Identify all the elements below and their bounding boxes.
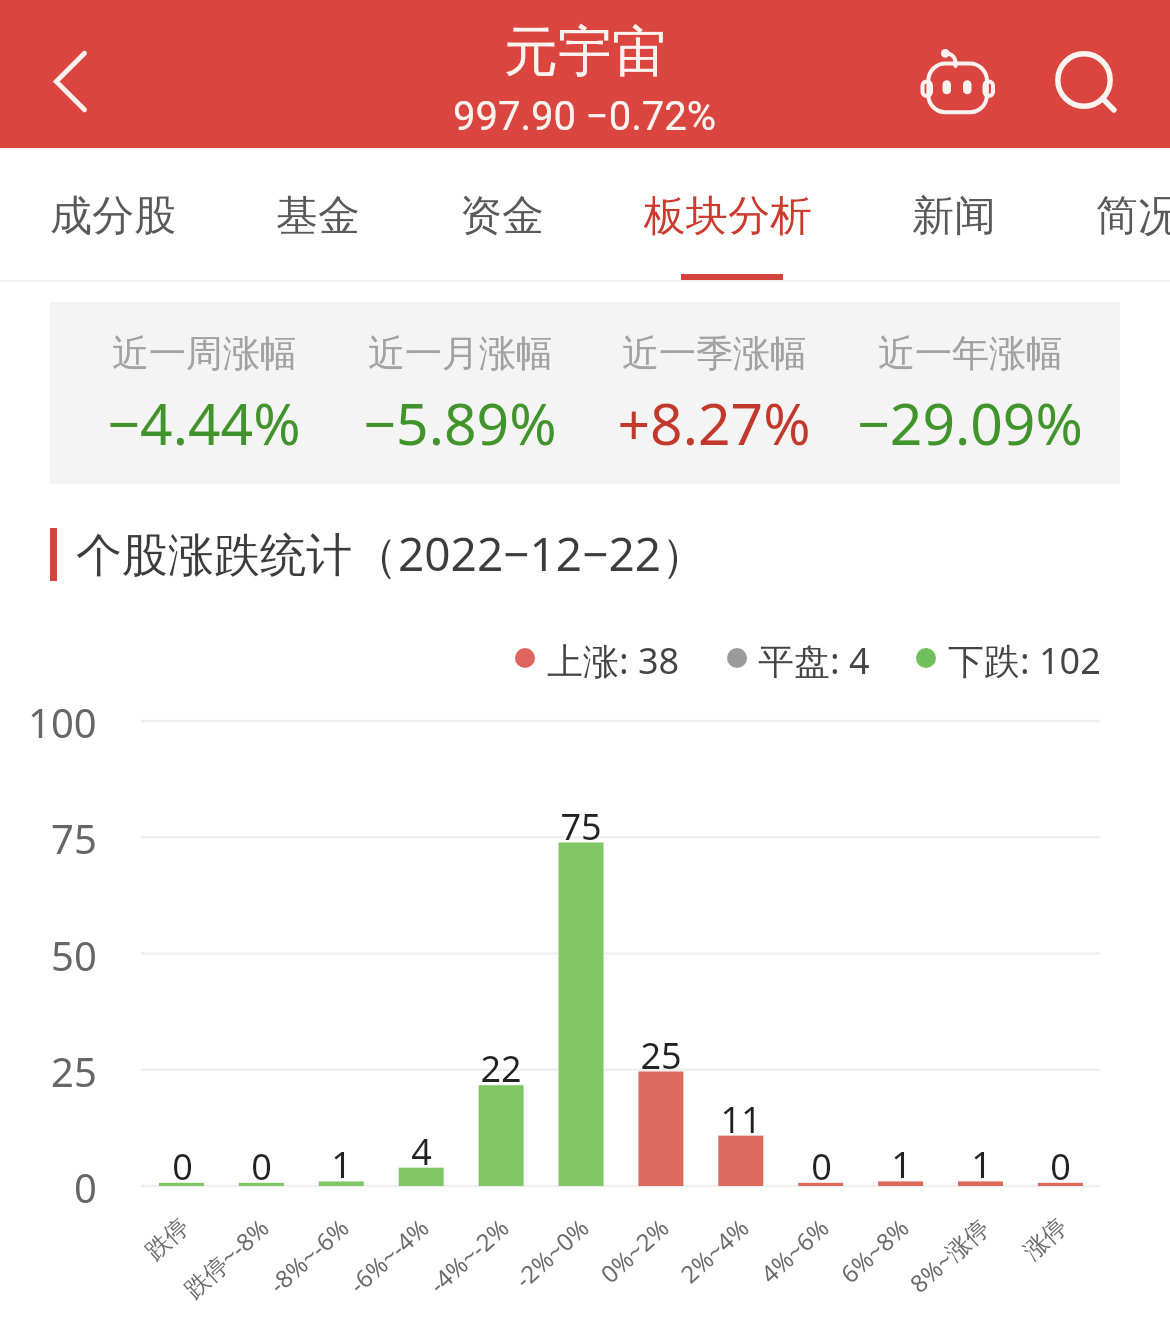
button[interactable]: AI assistant robot — [897, 0, 1017, 148]
staticText: 4%~6% — [752, 1211, 835, 1290]
staticText: 个股涨跌统计（2022−12−22） — [76, 522, 708, 585]
staticText: 997.90 −0.72% — [453, 93, 717, 140]
staticText: 2%~4% — [672, 1211, 755, 1290]
button[interactable]: 资金 — [410, 148, 594, 280]
staticText: 近一年涨幅 — [878, 330, 1063, 377]
staticText: 1 — [891, 1140, 912, 1189]
staticText: 新闻 — [912, 190, 996, 243]
staticText: 1 — [971, 1140, 992, 1189]
staticText: 4 — [411, 1127, 432, 1176]
button[interactable]: 板块分析 — [594, 148, 862, 280]
button[interactable]: Search — [1024, 0, 1144, 148]
staticText: 近一季涨幅 — [622, 330, 807, 377]
staticText: -2%~0% — [507, 1211, 595, 1295]
staticText: −4.44% — [107, 384, 301, 462]
staticText: 基金 — [276, 190, 360, 243]
staticText: 75 — [560, 802, 602, 851]
staticText: 11 — [720, 1095, 762, 1144]
staticText: 6%~8% — [832, 1211, 915, 1290]
staticText: 0 — [251, 1142, 272, 1191]
staticText: −29.09% — [857, 384, 1083, 462]
staticText: 75 — [51, 811, 97, 865]
staticText: 100 — [28, 695, 97, 749]
button[interactable]: 成分股 — [0, 148, 226, 280]
staticText: 成分股 — [50, 190, 176, 243]
staticText: 板块分析 — [644, 190, 812, 243]
staticText: 1 — [331, 1140, 352, 1189]
staticText: 0 — [1050, 1142, 1071, 1191]
staticText: 0%~2% — [592, 1211, 675, 1290]
staticText: 涨停 — [1017, 1212, 1073, 1266]
staticText: -8%~-6% — [261, 1211, 355, 1300]
staticText: 0 — [74, 1160, 97, 1214]
staticText: −5.89% — [363, 384, 557, 462]
staticText: 元宇宙 — [504, 18, 666, 86]
staticText: 8%~涨停 — [902, 1211, 995, 1300]
staticText: 平盘: 4 — [758, 636, 870, 685]
button[interactable]: 基金 — [226, 148, 410, 280]
staticText: -6%~-4% — [341, 1211, 435, 1300]
staticText: 下跌: 102 — [948, 636, 1101, 685]
staticText: -4%~-2% — [421, 1211, 515, 1300]
staticText: 上涨: 38 — [547, 636, 680, 685]
staticText: 近一周涨幅 — [112, 330, 297, 377]
staticText: 50 — [51, 928, 97, 982]
staticText: 0 — [811, 1142, 832, 1191]
staticText: 25 — [640, 1031, 682, 1080]
staticText: 跌停~-8% — [176, 1211, 275, 1305]
staticText: +8.27% — [617, 384, 811, 462]
staticText: 0 — [172, 1142, 193, 1191]
button[interactable]: Back — [0, 0, 150, 148]
button[interactable]: 新闻 — [862, 148, 1046, 280]
button[interactable]: 简况 — [1046, 148, 1170, 280]
staticText: 22 — [480, 1044, 522, 1093]
staticText: 跌停 — [139, 1212, 195, 1266]
staticText: 简况 — [1096, 190, 1170, 243]
staticText: 25 — [51, 1044, 97, 1098]
staticText: 近一月涨幅 — [368, 330, 553, 377]
staticText: 资金 — [460, 190, 544, 243]
